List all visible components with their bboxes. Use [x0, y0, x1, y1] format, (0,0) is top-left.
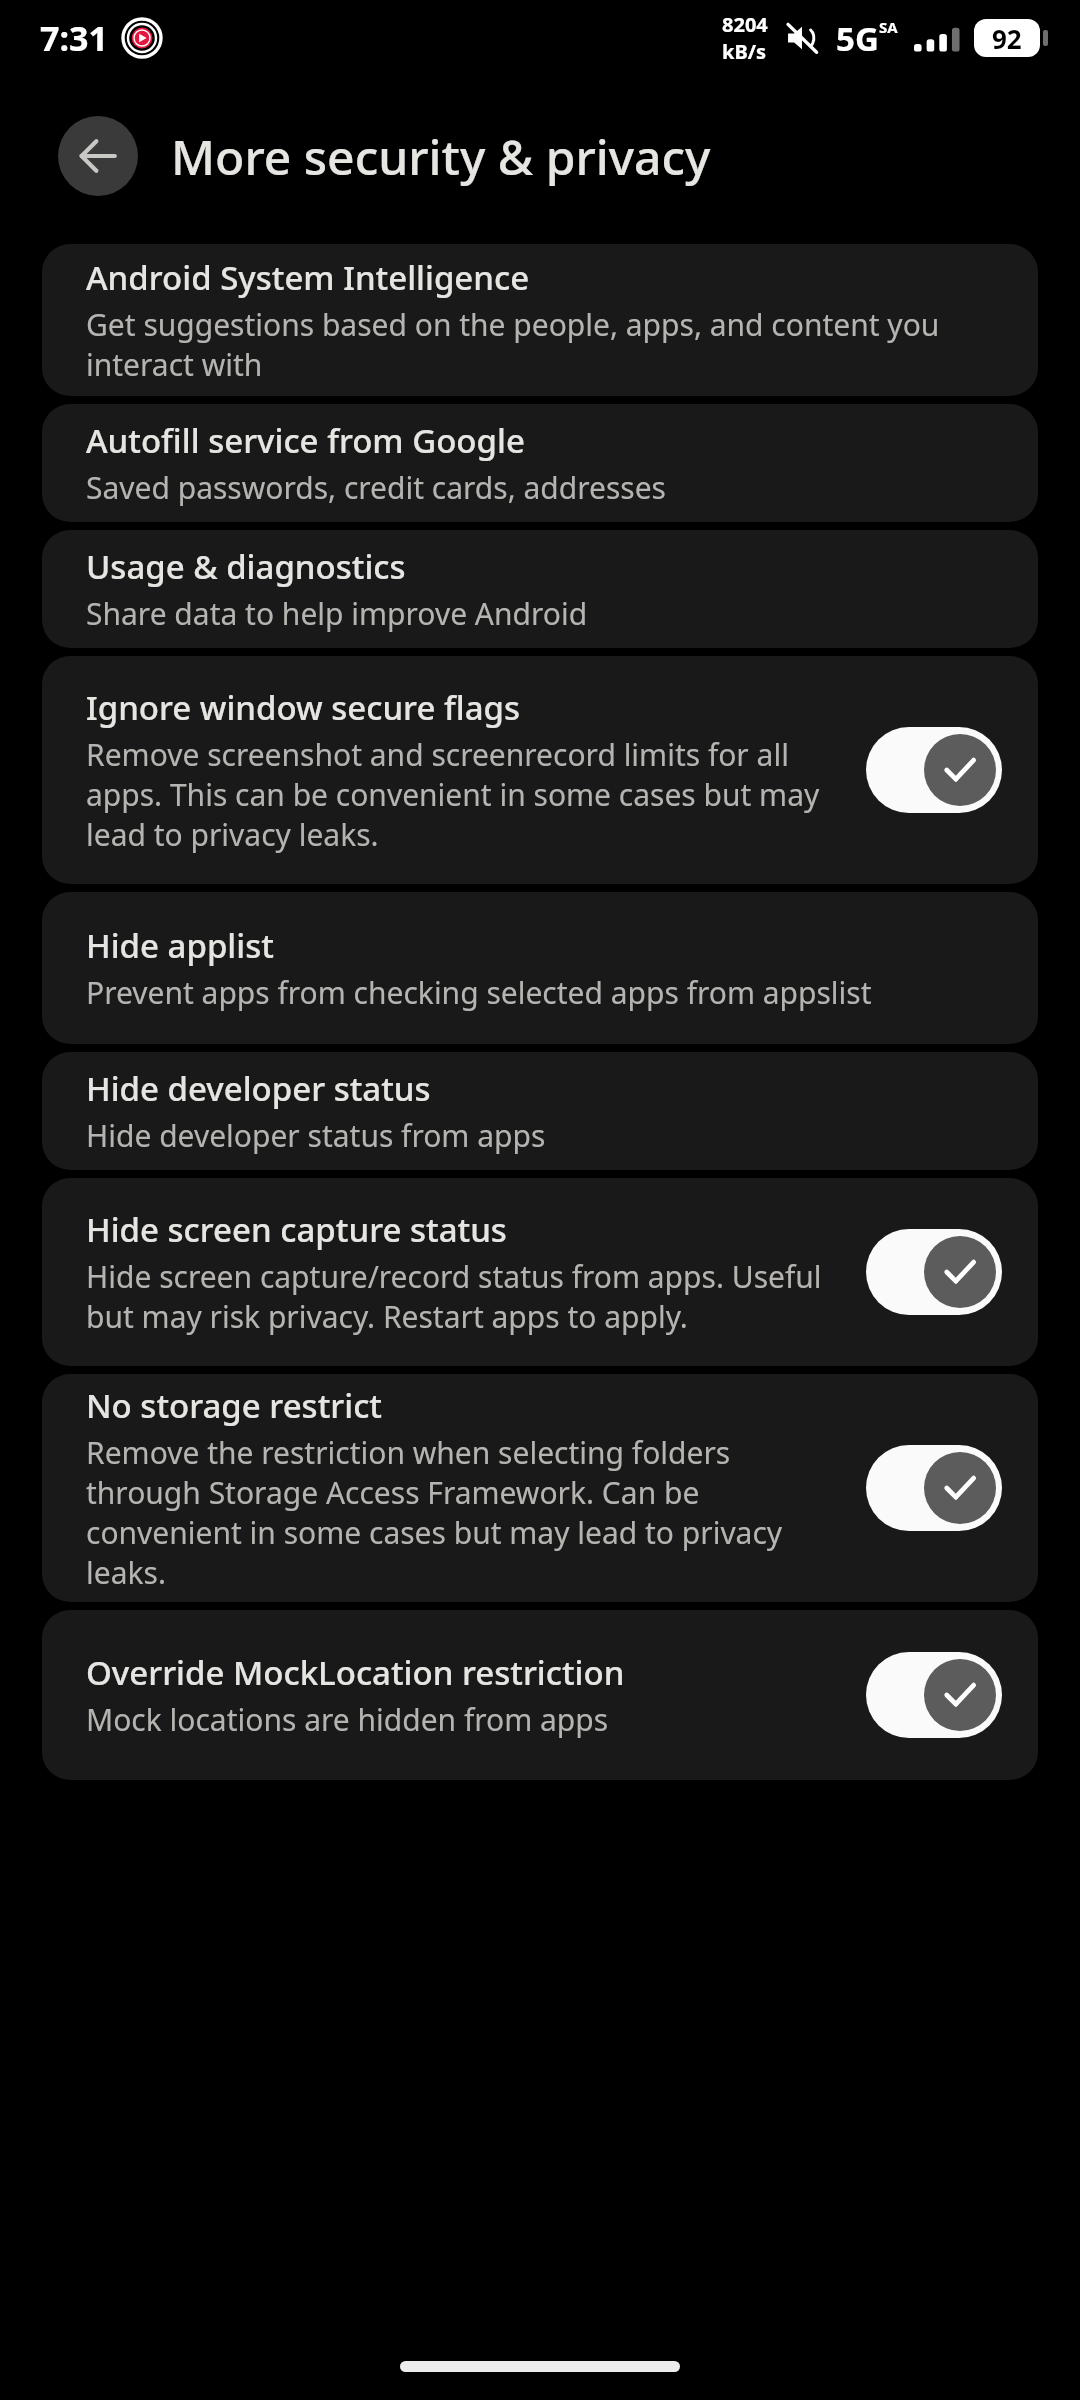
- staticText: 8204: [722, 11, 768, 38]
- staticText: kB/s: [722, 38, 767, 65]
- staticText: 7:31: [40, 15, 108, 61]
- button[interactable]: Hide applist: [42, 892, 1038, 1044]
- button[interactable]: Usage & diagnostics: [42, 530, 1038, 648]
- staticText: Hide screen capture status: [86, 1207, 507, 1252]
- staticText: Mock locations are hidden from apps: [86, 1699, 609, 1740]
- button[interactable]: Toggle setting: [866, 727, 1002, 813]
- button[interactable]: Toggle setting: [866, 1652, 1002, 1738]
- staticText: Get suggestions based on the people, app…: [86, 304, 1002, 385]
- staticText: More security & privacy: [171, 124, 711, 189]
- staticText: Ignore window secure flags: [86, 685, 521, 730]
- button[interactable]: Ignore window secure flags: [42, 656, 1038, 884]
- button[interactable]: Toggle setting: [866, 1445, 1002, 1531]
- staticText: Prevent apps from checking selected apps…: [86, 972, 872, 1013]
- button[interactable]: Hide developer status: [42, 1052, 1038, 1170]
- button[interactable]: No storage restrict: [42, 1374, 1038, 1602]
- button[interactable]: Hide screen capture status: [42, 1178, 1038, 1366]
- button[interactable]: Android System Intelligence: [42, 244, 1038, 396]
- staticText: Override MockLocation restriction: [86, 1650, 625, 1695]
- staticText: Remove the restriction when selecting fo…: [86, 1432, 842, 1593]
- staticText: Share data to help improve Android: [86, 593, 588, 634]
- staticText: Hide developer status: [86, 1066, 431, 1111]
- staticText: Hide applist: [86, 923, 274, 968]
- staticText: 5G: [836, 16, 879, 61]
- staticText: SA: [879, 17, 898, 37]
- button[interactable]: Autofill service from Google: [42, 404, 1038, 522]
- button[interactable]: Override MockLocation restriction: [42, 1610, 1038, 1780]
- staticText: Hide developer status from apps: [86, 1115, 546, 1156]
- staticText: Android System Intelligence: [86, 255, 530, 300]
- staticText: Hide screen capture/record status from a…: [86, 1256, 842, 1337]
- button[interactable]: Back: [58, 116, 138, 196]
- staticText: No storage restrict: [86, 1383, 382, 1428]
- staticText: Usage & diagnostics: [86, 544, 406, 589]
- staticText: Autofill service from Google: [86, 418, 525, 463]
- staticText: Remove screenshot and screenrecord limit…: [86, 734, 842, 855]
- button[interactable]: Toggle setting: [866, 1229, 1002, 1315]
- staticText: 92: [992, 21, 1022, 56]
- staticText: Saved passwords, credit cards, addresses: [86, 467, 666, 508]
